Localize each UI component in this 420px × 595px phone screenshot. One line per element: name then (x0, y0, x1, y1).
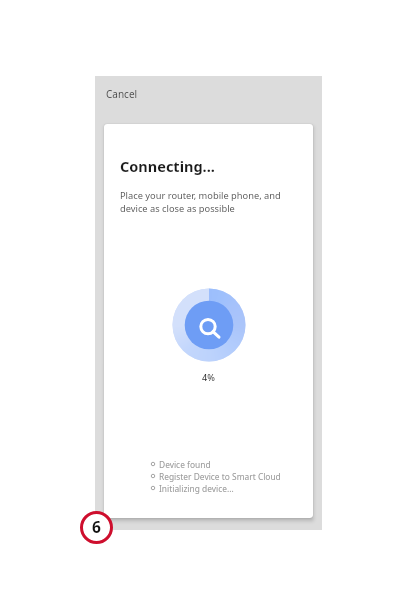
staticText: 6 (92, 516, 101, 537)
staticText: Place your router, mobile phone, and dev… (120, 189, 281, 214)
staticText: Connecting... (120, 156, 215, 176)
staticText: Register Device to Smart Cloud (159, 471, 281, 482)
other: Searching for device, 4 percent (169, 285, 249, 365)
staticText: 4% (202, 371, 215, 383)
button[interactable]: Cancel (96, 77, 152, 111)
button[interactable]: Step 6 (80, 511, 113, 544)
staticText: Cancel (106, 87, 138, 101)
staticText: Device found (159, 459, 211, 470)
staticText: Initializing device... (159, 483, 234, 494)
